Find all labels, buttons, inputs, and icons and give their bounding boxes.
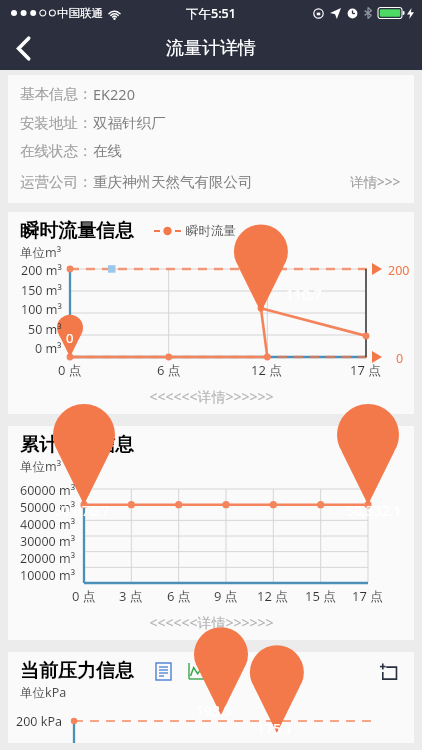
staticText: 单位m³ — [20, 244, 62, 261]
staticText: 单位kPa — [20, 684, 67, 701]
staticText: 193.9 — [196, 701, 232, 720]
button[interactable]: <<<<<<详情>>>>>> — [8, 605, 414, 640]
staticText: 详情>>> — [350, 173, 401, 191]
staticText: 安装地址： — [20, 114, 93, 132]
staticText: 0 点 — [58, 361, 82, 379]
staticText: 重庆神州天然气有限公司 — [93, 173, 253, 191]
button[interactable]: Bar chart — [218, 660, 241, 683]
button[interactable]: <<<<<<详情>>>>>> — [8, 379, 414, 414]
staticText: 12 点 — [251, 361, 283, 379]
staticText: 0 点 — [72, 587, 96, 605]
staticText: 40000 m³ — [20, 516, 76, 533]
staticText: 3 点 — [119, 587, 143, 605]
staticText: 0 — [66, 329, 74, 347]
staticText: 20000 m³ — [20, 550, 76, 567]
staticText: 50,076.7 — [54, 501, 110, 520]
button[interactable]: 详情>>> — [347, 170, 404, 194]
staticText: 双福针织厂 — [93, 114, 166, 132]
staticText: 当前压力信息 — [20, 659, 134, 683]
button[interactable]: Add — [377, 660, 400, 683]
staticText: 100 m³ — [21, 301, 62, 318]
staticText: 30000 m³ — [20, 533, 76, 550]
staticText: 累计流量信息 — [20, 433, 134, 457]
staticText: 在线状态： — [20, 142, 93, 160]
staticText: 运营公司： — [20, 173, 93, 191]
staticText: 110.7 — [286, 285, 322, 304]
staticText: 中国联通 — [57, 6, 103, 20]
staticText: 200 m³ — [21, 262, 62, 279]
button[interactable]: Back — [0, 26, 46, 70]
staticText: 基本信息： — [20, 85, 93, 103]
staticText: 瞬时流量 — [186, 223, 236, 239]
staticText: 0 m³ — [35, 340, 62, 357]
staticText: 在线 — [93, 142, 122, 160]
staticText: 瞬时流量信息 — [20, 219, 134, 243]
staticText: 17 点 — [352, 587, 384, 605]
staticText: EK220 — [93, 84, 135, 104]
staticText: 200 kPa — [16, 713, 62, 730]
staticText: 17 点 — [350, 361, 382, 379]
staticText: 175.1 — [257, 719, 293, 738]
staticText: 0 — [396, 350, 404, 367]
staticText: 50,332.1 — [346, 501, 402, 520]
staticText: 50000 m³ — [20, 499, 76, 516]
staticText: <<<<<<详情>>>>>> — [149, 387, 274, 406]
staticText: 下午5:51 — [186, 5, 236, 22]
staticText: 10000 m³ — [20, 567, 76, 583]
staticText: 6 点 — [167, 587, 191, 605]
button[interactable]: Edit — [251, 660, 274, 683]
button[interactable]: Line chart — [185, 660, 208, 683]
staticText: 12 点 — [257, 587, 289, 605]
staticText: 50 m³ — [28, 321, 62, 338]
staticText: 9 点 — [214, 587, 238, 605]
staticText: 15 点 — [305, 587, 337, 605]
staticText: 流量计详情 — [166, 37, 256, 60]
staticText: <<<<<<详情>>>>>> — [149, 613, 274, 632]
staticText: 单位m³ — [20, 458, 62, 475]
staticText: 6 点 — [157, 361, 181, 379]
staticText: 60000 m³ — [20, 482, 76, 499]
staticText: 150 m³ — [21, 282, 62, 299]
staticText: 200 — [388, 262, 410, 279]
button[interactable]: Records — [152, 660, 175, 683]
